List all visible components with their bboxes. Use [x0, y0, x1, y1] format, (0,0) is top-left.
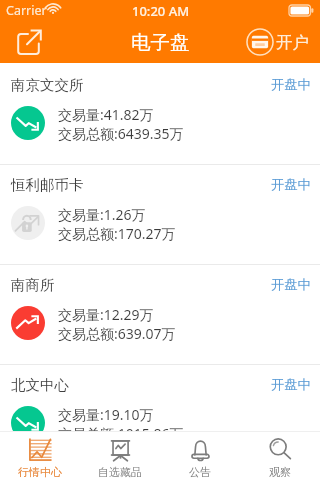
staticText: 交易量:12.29万 — [58, 305, 154, 324]
button[interactable]: 北文中心 — [0, 365, 320, 464]
staticText: Carrier — [6, 2, 47, 19]
button[interactable]: 行情中心 — [0, 432, 80, 480]
staticText: 恒利邮币卡 — [11, 176, 84, 194]
staticText: 公告 — [189, 465, 211, 479]
staticText: 南商所 — [11, 276, 55, 294]
staticText: 观察 — [269, 465, 291, 479]
staticText: 开盘中 — [271, 176, 311, 193]
staticText: 开户 — [276, 32, 309, 53]
button[interactable]: 南京文交所 — [0, 65, 320, 164]
staticText: 南京文交所 — [11, 76, 84, 94]
staticText: 交易总额:639.07万 — [58, 324, 176, 343]
staticText: 交易量:41.82万 — [58, 105, 154, 124]
staticText: 开盘中 — [271, 76, 311, 93]
button[interactable]: 观察 — [240, 432, 320, 480]
button[interactable]: 开户 — [246, 28, 309, 56]
button[interactable]: 恒利邮币卡 — [0, 165, 320, 264]
staticText: 北文中心 — [11, 376, 69, 394]
staticText: 自选藏品 — [98, 465, 142, 479]
staticText: 交易总额:1015.86万 — [58, 424, 184, 443]
staticText: 开盘中 — [271, 276, 311, 293]
staticText: 交易量:19.10万 — [58, 405, 154, 424]
button[interactable]: 南商所 — [0, 265, 320, 364]
staticText: 行情中心 — [18, 465, 62, 479]
button[interactable]: Share — [11, 24, 45, 58]
button[interactable]: 自选藏品 — [80, 432, 160, 480]
staticText: 10:20 AM — [132, 2, 190, 20]
staticText: 开盘中 — [271, 376, 311, 393]
button[interactable]: 公告 — [160, 432, 240, 480]
staticText: 交易总额:6439.35万 — [58, 124, 184, 143]
staticText: 交易量:1.26万 — [58, 205, 146, 224]
staticText: 电子盘 — [131, 30, 190, 55]
staticText: 交易总额:170.27万 — [58, 224, 176, 243]
